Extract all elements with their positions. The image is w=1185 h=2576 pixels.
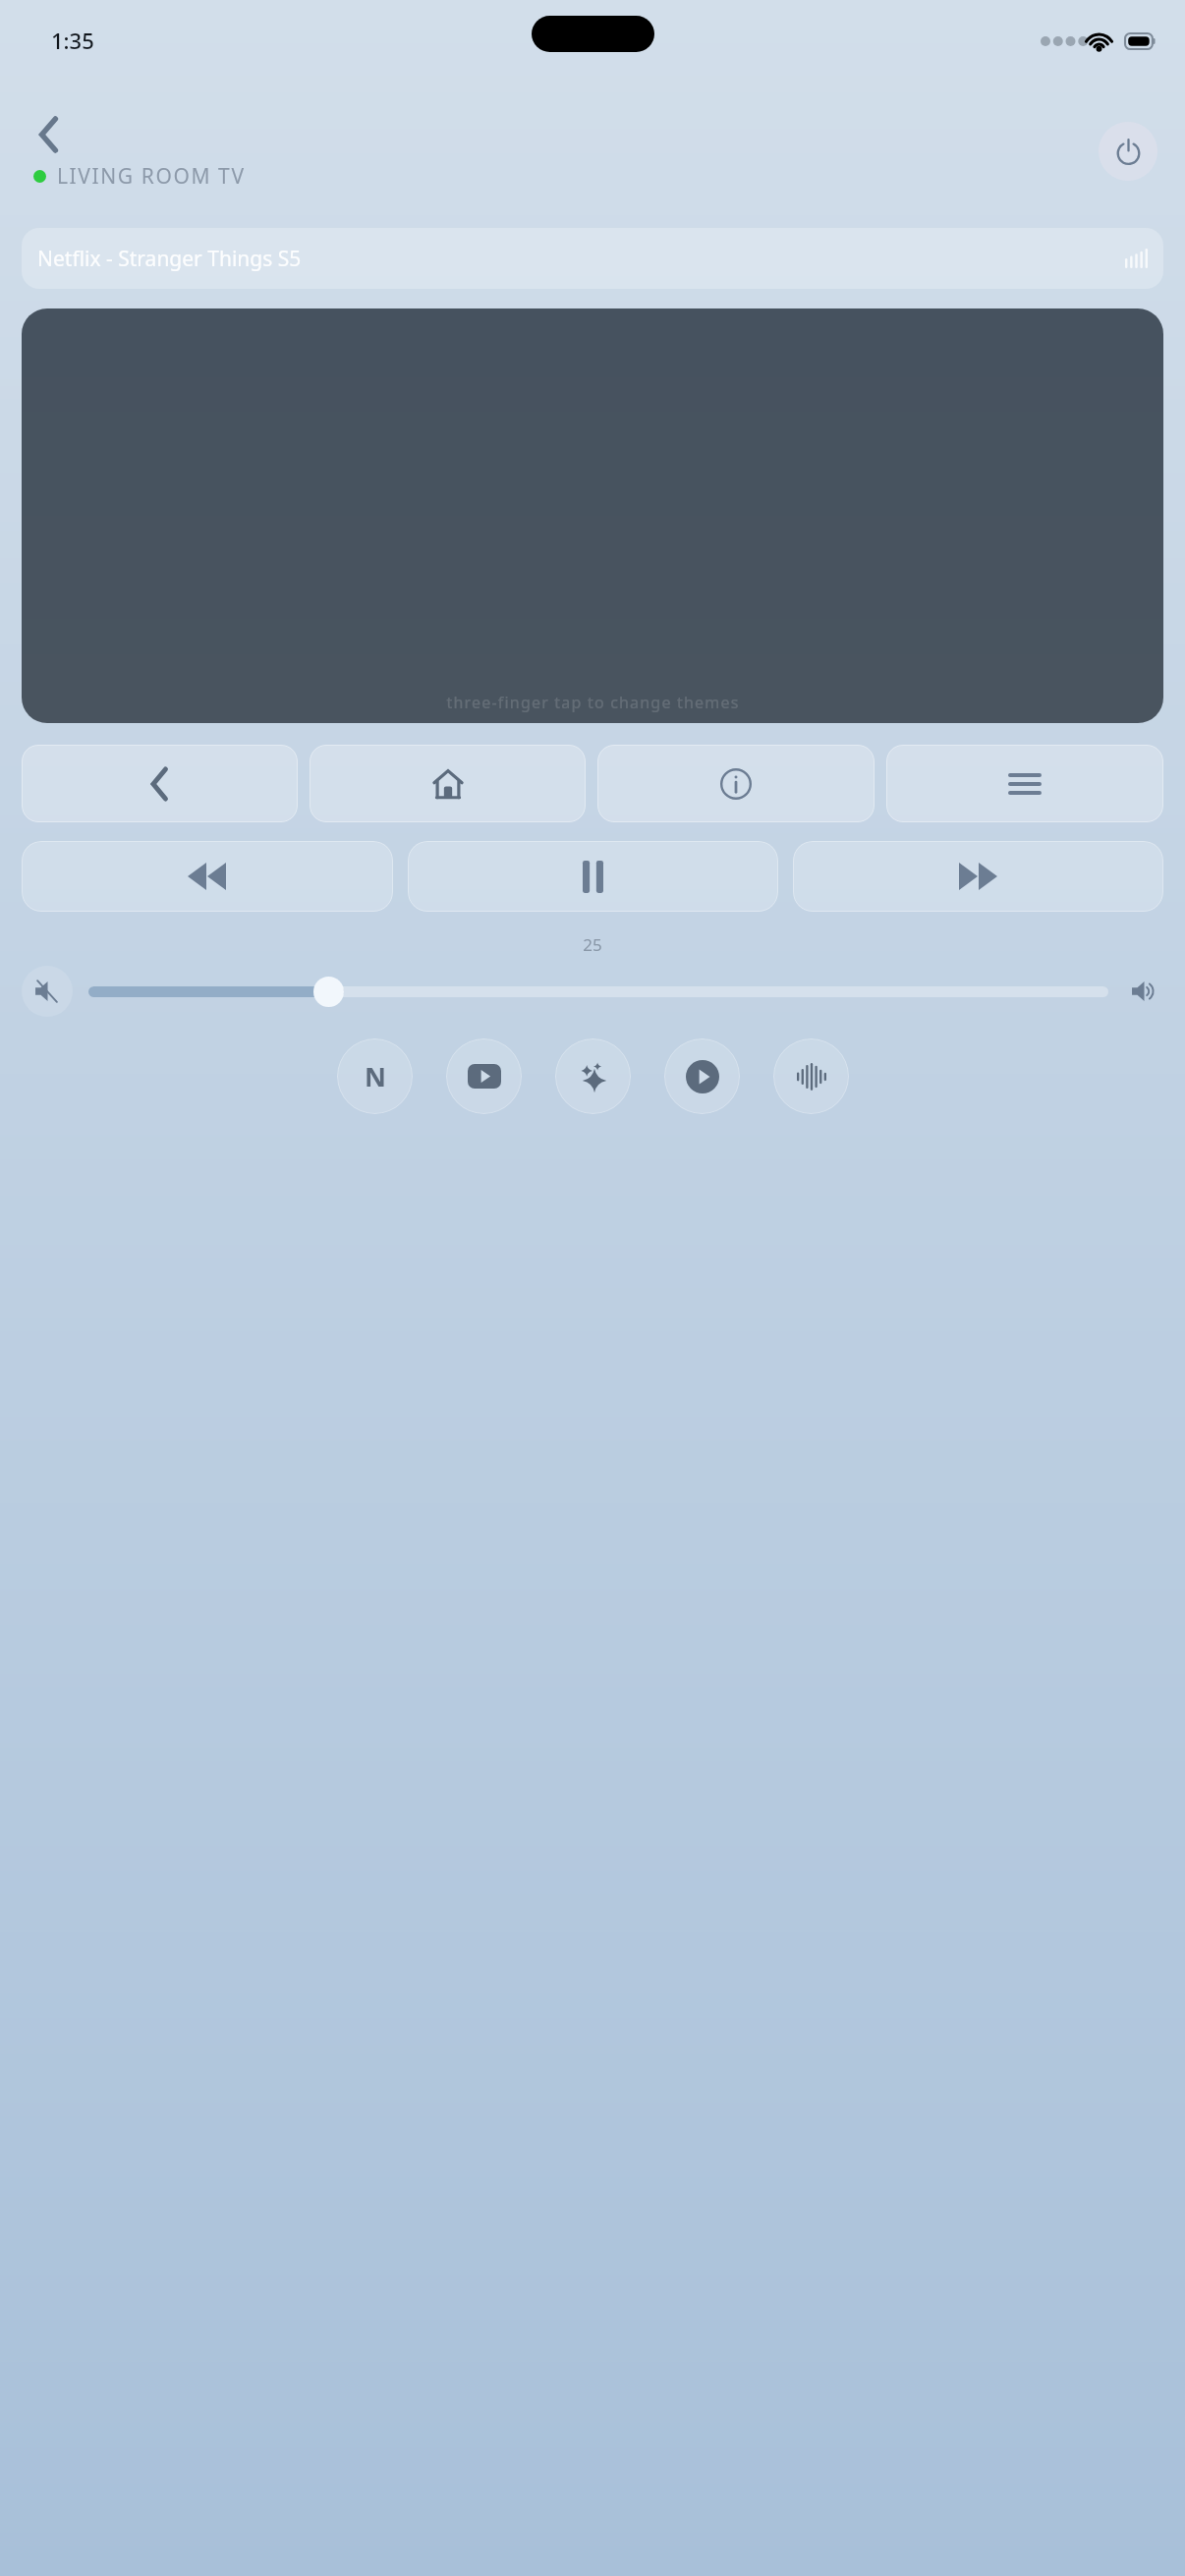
button[interactable]: Back	[28, 113, 71, 156]
button[interactable]: Home	[310, 745, 586, 822]
staticText: Netflix - Stranger Things S5	[37, 245, 302, 273]
button[interactable]: Disney Plus	[555, 1038, 631, 1114]
button[interactable]: Spotify	[773, 1038, 849, 1114]
button[interactable]: Info	[597, 745, 875, 822]
button[interactable]: Volume up	[1124, 972, 1163, 1011]
button[interactable]: Prime Video	[664, 1038, 740, 1114]
button[interactable]: Power	[1099, 122, 1157, 181]
button[interactable]: Rewind	[22, 841, 393, 912]
staticText: N	[365, 1058, 386, 1094]
staticText: 1:35	[51, 26, 94, 55]
button[interactable]: Volume	[313, 977, 344, 1007]
button[interactable]: Back	[22, 745, 298, 822]
button[interactable]: Netflix	[337, 1038, 413, 1114]
button[interactable]: Fast forward	[793, 841, 1163, 912]
button[interactable]: Pause	[408, 841, 778, 912]
button[interactable]: Mute	[22, 966, 73, 1017]
staticText: LIVING ROOM TV	[57, 162, 246, 191]
button[interactable]: YouTube	[446, 1038, 522, 1114]
button[interactable]: three-finger tap to change themes	[22, 308, 1163, 723]
button[interactable]: Netflix - Stranger Things S5	[22, 228, 1163, 289]
button[interactable]: Menu	[886, 745, 1163, 822]
staticText: three-finger tap to change themes	[446, 692, 740, 713]
